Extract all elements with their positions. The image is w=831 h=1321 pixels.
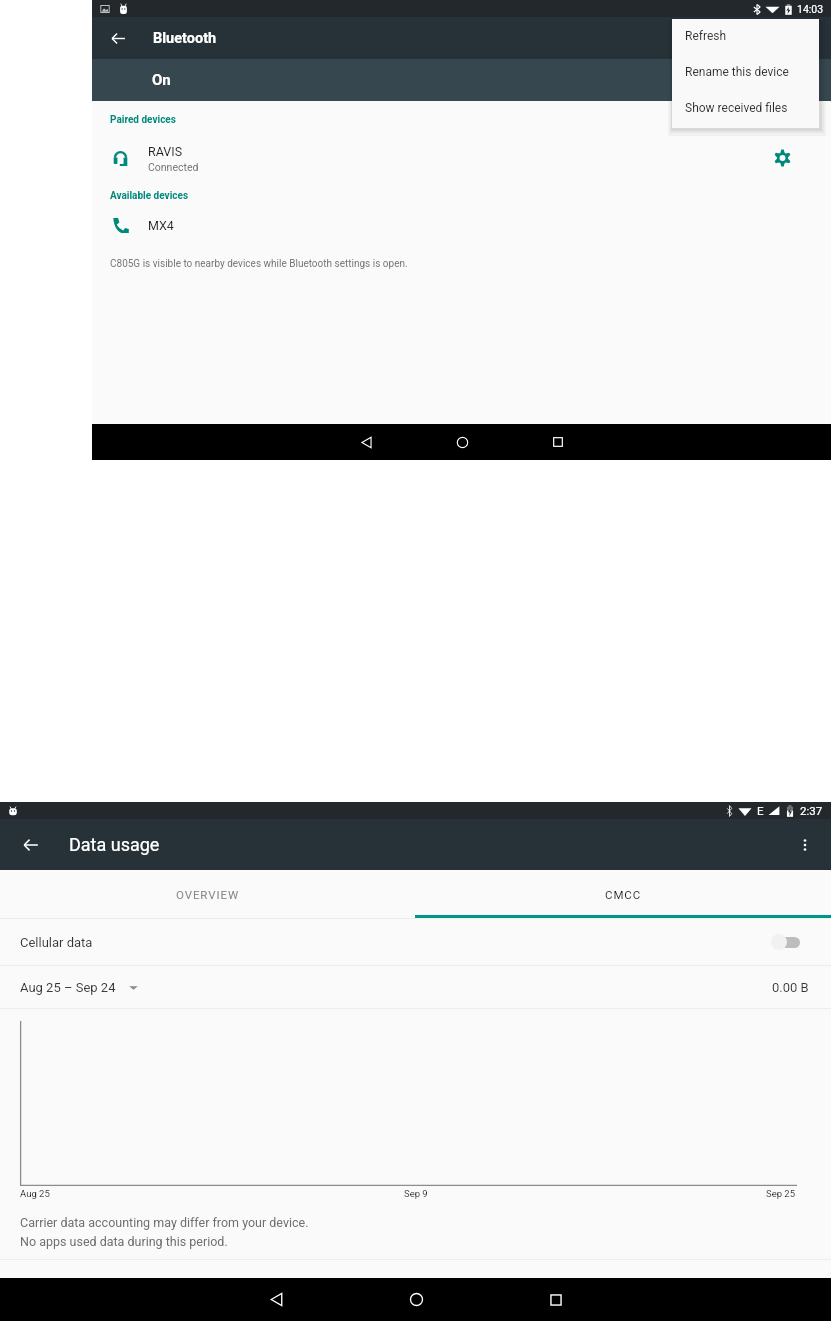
staticText: CMCC [605, 888, 642, 901]
staticText: Data usage [69, 834, 160, 855]
staticText: Bluetooth [153, 30, 217, 47]
staticText: Cellular data [20, 935, 93, 950]
staticText: 14:03 [797, 3, 824, 15]
button[interactable]: MX4 [92, 209, 831, 241]
staticText: No apps used data during this period. [20, 1234, 228, 1249]
button[interactable]: Back [0, 819, 62, 870]
button[interactable]: Refresh [672, 19, 819, 55]
button[interactable]: Cellular data toggle [771, 933, 803, 951]
staticText: 0.00 B [772, 980, 809, 995]
button[interactable]: On [92, 59, 831, 101]
staticText: Rename this device [685, 65, 789, 79]
button[interactable]: Aug 25 – Sep 24 [0, 980, 145, 995]
button[interactable]: OVERVIEW [0, 870, 415, 919]
staticText: E [757, 804, 764, 817]
button[interactable]: Recents [486, 1278, 626, 1321]
staticText: Aug 25 – Sep 24 [20, 980, 116, 995]
staticText: Paired devices [110, 114, 176, 126]
button[interactable]: Back [92, 17, 144, 59]
staticText: C805G is visible to nearby devices while… [110, 258, 408, 270]
button[interactable]: Cellular data [0, 919, 831, 965]
staticText: MX4 [148, 218, 174, 233]
staticText: RAVIS [148, 144, 183, 159]
button[interactable]: More options [779, 819, 831, 870]
button[interactable]: Back [206, 1278, 346, 1321]
staticText: Refresh [685, 29, 727, 43]
button[interactable]: Device settings [734, 137, 831, 179]
staticText: Show received files [685, 101, 788, 115]
staticText: Carrier data accounting may differ from … [20, 1215, 309, 1230]
button[interactable]: CMCC [415, 870, 831, 919]
button[interactable]: Home [414, 424, 510, 460]
staticText: Sep 9 [404, 1188, 428, 1199]
staticText: Aug 25 [20, 1188, 50, 1199]
button[interactable]: RAVIS [92, 137, 831, 179]
button[interactable]: Back [318, 424, 414, 460]
button[interactable]: Home [346, 1278, 486, 1321]
staticText: OVERVIEW [176, 888, 240, 901]
staticText: 2:37 [800, 804, 823, 817]
staticText: On [152, 71, 171, 89]
button[interactable]: Show received files [672, 91, 819, 127]
staticText: Sep 25 [766, 1188, 796, 1199]
button[interactable]: Rename this device [672, 55, 819, 91]
button[interactable]: Recents [510, 424, 606, 460]
staticText: Connected [148, 161, 199, 173]
staticText: Available devices [110, 190, 189, 202]
